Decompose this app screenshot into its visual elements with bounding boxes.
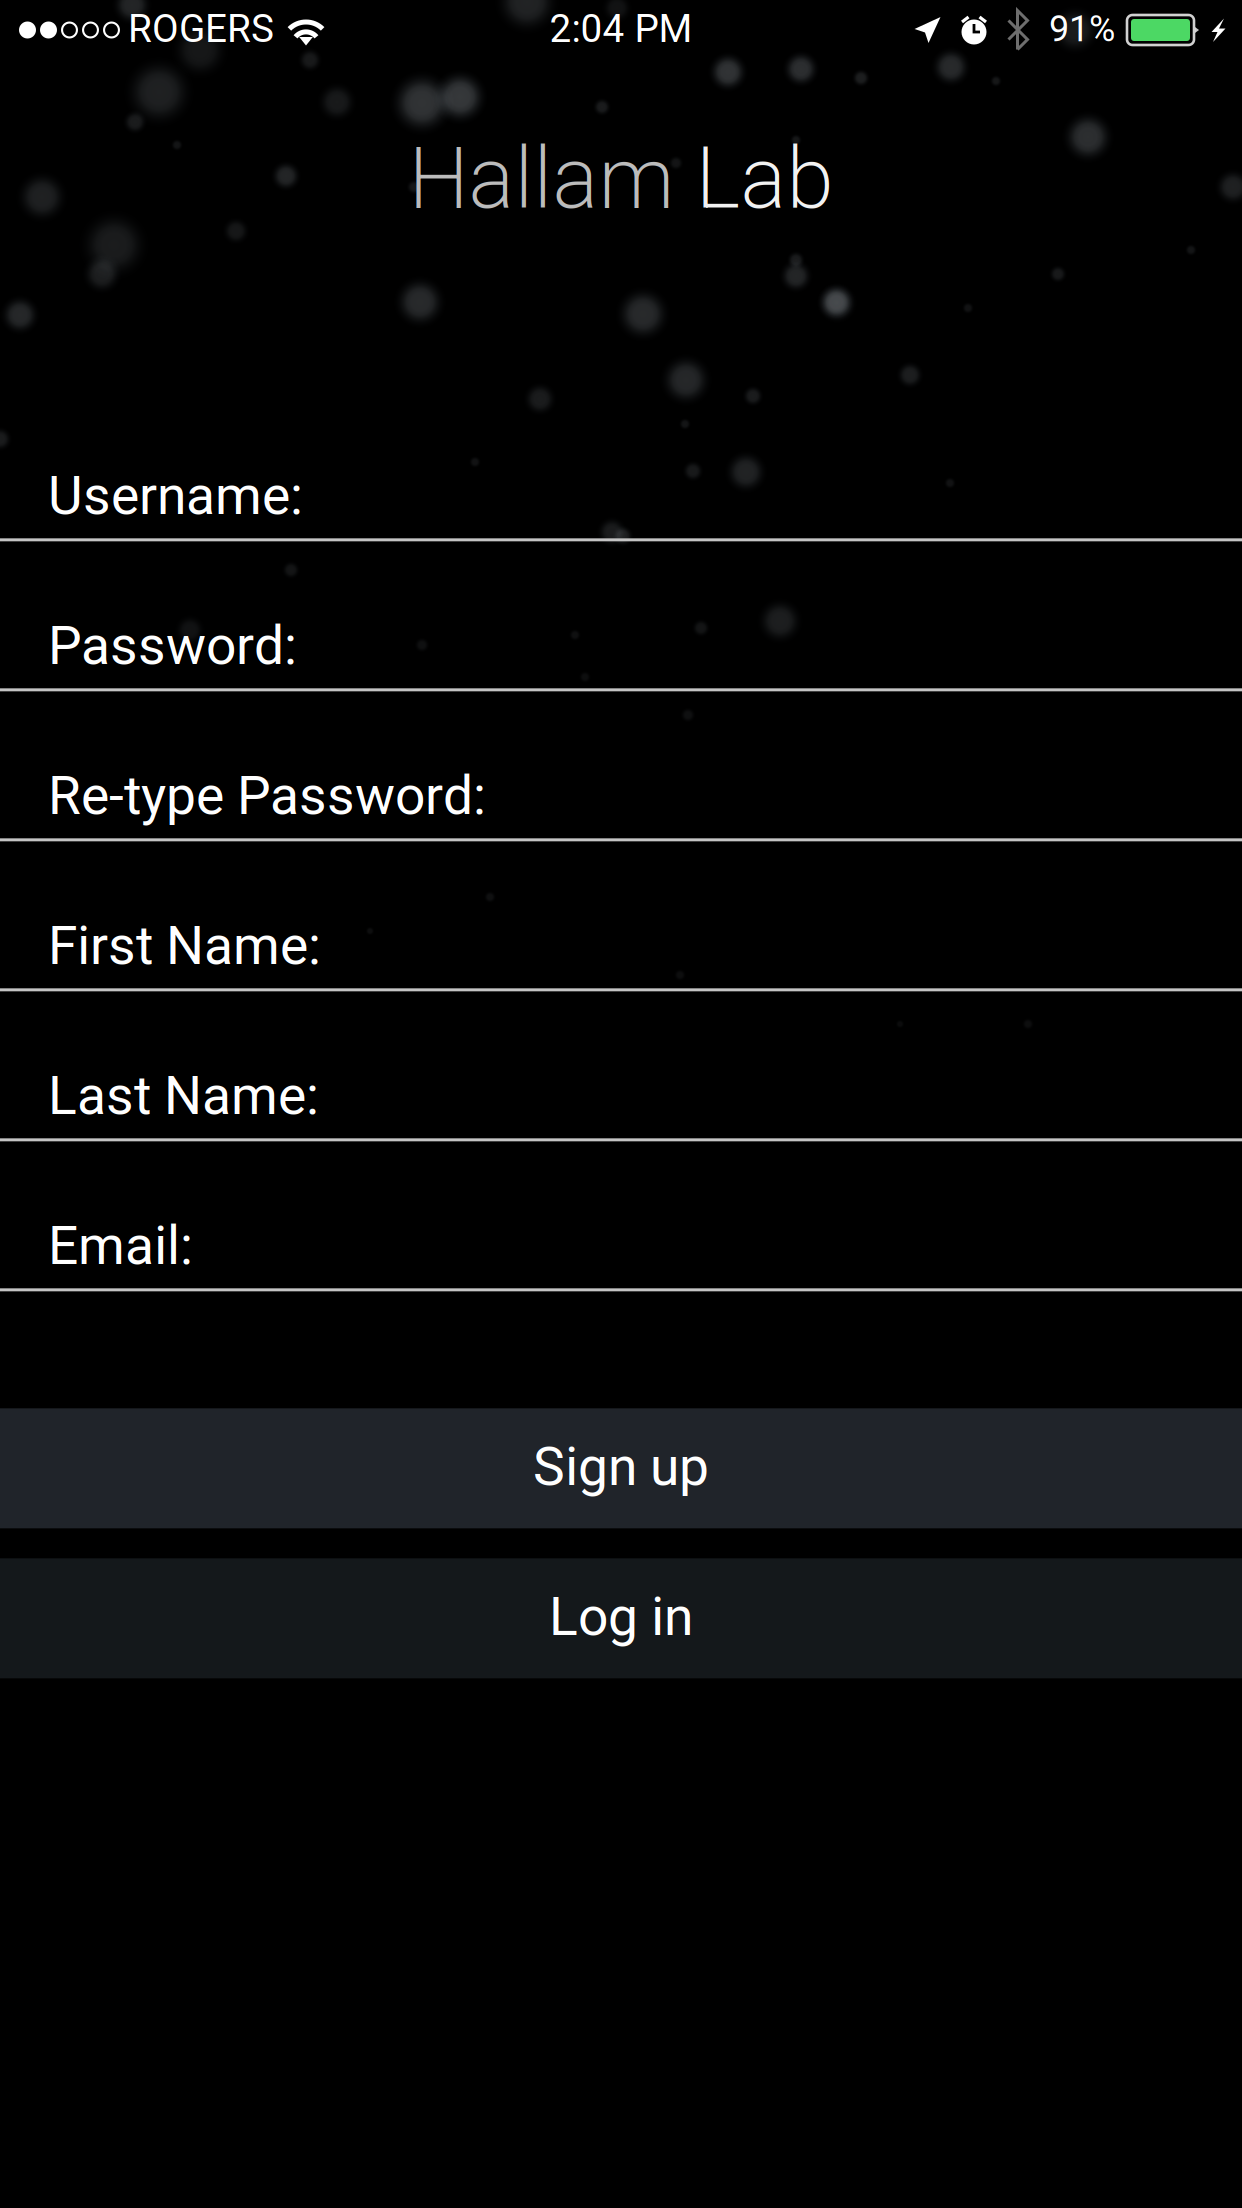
staticText: Lab xyxy=(674,118,833,243)
button[interactable]: Last Name: xyxy=(0,991,1242,1141)
staticText: Sign up xyxy=(533,1429,709,1507)
button[interactable]: First Name: xyxy=(0,841,1242,991)
button[interactable]: Email: xyxy=(0,1141,1242,1291)
staticText: Hallam xyxy=(408,118,674,243)
button[interactable]: Re-type Password: xyxy=(0,691,1242,841)
staticText: 91% xyxy=(1049,4,1115,56)
button[interactable]: Sign up xyxy=(0,1408,1242,1528)
button[interactable]: Password: xyxy=(0,541,1242,691)
staticText: Log in xyxy=(549,1579,693,1657)
button[interactable]: Log in xyxy=(0,1558,1242,1678)
button[interactable]: Username: xyxy=(0,391,1242,541)
staticText: Password: xyxy=(48,608,297,686)
staticText: ROGERS xyxy=(128,2,274,58)
staticText: Re-type Password: xyxy=(48,758,486,836)
staticText: Email: xyxy=(48,1208,193,1286)
staticText: First Name: xyxy=(48,908,321,986)
staticText: Last Name: xyxy=(48,1058,319,1136)
staticText: 2:04 PM xyxy=(549,2,692,58)
staticText: Username: xyxy=(48,458,303,536)
